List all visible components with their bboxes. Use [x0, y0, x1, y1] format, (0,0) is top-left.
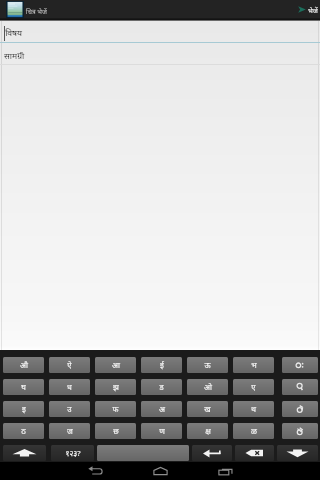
button[interactable]: सामग्री [0, 49, 320, 62]
staticText: ड [159, 382, 164, 393]
staticText: ऐ [67, 360, 72, 371]
staticText: झ [113, 382, 119, 393]
button[interactable]: झ [95, 379, 136, 395]
staticText: सामग्री [4, 50, 25, 62]
staticText: ख [204, 404, 211, 415]
staticText: ऊ [204, 360, 211, 371]
button[interactable]: थ [233, 401, 274, 417]
staticText: ध [67, 382, 72, 393]
staticText: आ [112, 360, 120, 371]
staticText: औ [20, 360, 28, 371]
staticText: अ [159, 404, 165, 415]
staticText: ठ [21, 426, 26, 437]
button[interactable]: भेजें [292, 0, 320, 18]
button[interactable]: Back [77, 462, 114, 480]
staticText: ज [67, 426, 73, 437]
staticText: इ [22, 404, 26, 415]
button[interactable]: क्ष [187, 423, 228, 439]
button[interactable]: ऐ [49, 357, 90, 373]
button[interactable]: अ [141, 401, 182, 417]
button[interactable]: ण [141, 423, 182, 439]
button[interactable]: ड [141, 379, 182, 395]
staticText: छ [113, 426, 119, 437]
button[interactable]: भ [233, 357, 274, 373]
staticText: भ [251, 360, 257, 371]
staticText: ळ [251, 426, 257, 437]
button[interactable]: ई [141, 357, 182, 373]
button[interactable]: Search [282, 379, 318, 395]
staticText: ए [251, 382, 256, 393]
button[interactable]: Backspace [235, 445, 274, 461]
button[interactable]: Enter [192, 445, 232, 461]
staticText: ओ [204, 382, 212, 393]
button[interactable]: १२३? [51, 445, 94, 461]
staticText: उ [67, 404, 72, 415]
button[interactable]: Recent apps [207, 462, 244, 480]
button[interactable]: छ [95, 423, 136, 439]
staticText: ण [159, 426, 165, 437]
button[interactable]: ओ [187, 379, 228, 395]
button[interactable]: ज [49, 423, 90, 439]
staticText: फ [112, 404, 119, 415]
staticText: क्ष [205, 426, 211, 437]
staticText: चित्र भेजें [26, 7, 47, 16]
button[interactable]: फ [95, 401, 136, 417]
button[interactable]: आ [95, 357, 136, 373]
button[interactable]: Visarga [282, 357, 318, 373]
button[interactable]: ध [49, 379, 90, 395]
button[interactable]: ळ [233, 423, 274, 439]
staticText: ई [160, 360, 164, 371]
button[interactable]: Symbol [282, 423, 318, 439]
button[interactable]: Space [97, 445, 189, 461]
button[interactable]: उ [49, 401, 90, 417]
button[interactable]: Home [142, 462, 179, 480]
staticText: भेजें [308, 6, 318, 15]
button[interactable]: Shift [3, 445, 46, 461]
button[interactable]: औ [3, 357, 44, 373]
button[interactable]: घ [3, 379, 44, 395]
button[interactable]: ऊ [187, 357, 228, 373]
button[interactable]: ठ [3, 423, 44, 439]
button[interactable]: इ [3, 401, 44, 417]
button[interactable]: ए [233, 379, 274, 395]
button[interactable]: Hide keyboard [277, 445, 318, 461]
staticText: घ [21, 382, 26, 393]
staticText: थ [251, 404, 256, 415]
button[interactable]: विषय [0, 24, 320, 42]
button[interactable]: ख [187, 401, 228, 417]
staticText: विषय [5, 27, 22, 39]
button[interactable]: Symbol [282, 401, 318, 417]
staticText: १२३? [65, 448, 81, 458]
